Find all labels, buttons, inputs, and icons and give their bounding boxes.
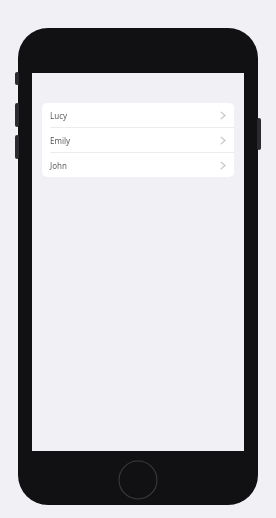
staticText: Emily <box>50 135 220 146</box>
button[interactable]: Home <box>118 460 158 500</box>
button[interactable]: Lucy <box>42 103 234 127</box>
button[interactable]: John <box>42 153 234 177</box>
button[interactable]: Emily <box>42 128 234 152</box>
staticText: John <box>50 160 220 171</box>
staticText: Lucy <box>50 110 220 121</box>
